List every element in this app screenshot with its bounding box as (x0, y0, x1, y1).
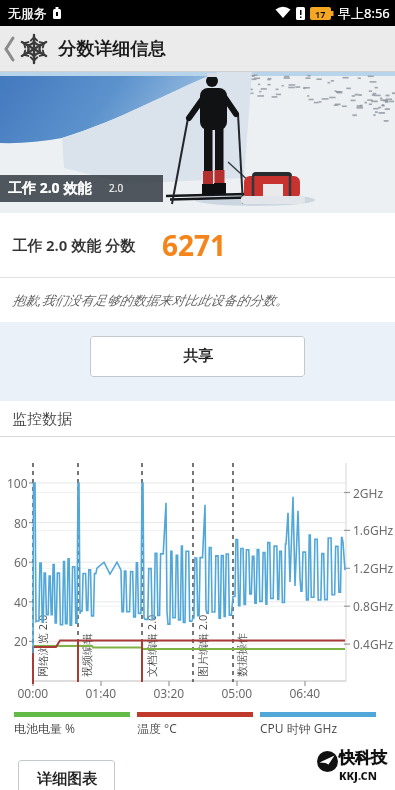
staticText: 抱歉,我们没有足够的数据来对比此设备的分数。 (12, 291, 289, 309)
staticText: 工作 2.0 效能 分数 (12, 235, 136, 255)
staticText: 无服务 (8, 5, 47, 21)
staticText: 详细图表 (37, 770, 97, 789)
staticText: 工作 2.0 效能 (8, 178, 92, 197)
staticText: 监控数据 (12, 410, 72, 429)
staticText: 17 (315, 8, 326, 20)
staticText: KKJ.CN (339, 768, 377, 783)
staticText: 6271 (162, 226, 227, 264)
staticText: 分数详细信息 (58, 38, 166, 61)
button[interactable]: 详细图表 (18, 760, 115, 790)
staticText: 温度 °C (137, 720, 177, 736)
button[interactable]: 共享 (90, 336, 305, 377)
staticText: 电池电量 % (14, 720, 76, 736)
staticText: 早上8:56 (338, 4, 390, 22)
staticText: 2.0 (109, 181, 124, 195)
button[interactable] (0, 26, 19, 72)
staticText: 共享 (183, 347, 213, 366)
staticText: CPU 时钟 GHz (260, 720, 338, 736)
staticText: 快科技 (339, 748, 387, 768)
